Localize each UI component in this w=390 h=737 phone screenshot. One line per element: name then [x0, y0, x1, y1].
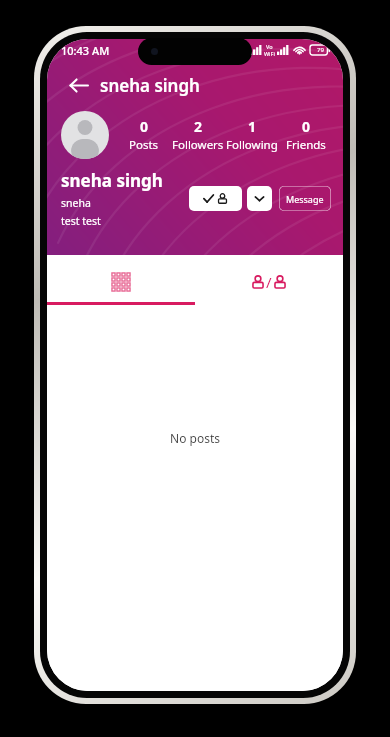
button[interactable]: Friends	[189, 186, 242, 211]
staticText: 1	[248, 117, 257, 136]
button[interactable]: 0	[117, 115, 171, 155]
button[interactable]: Friends list	[195, 262, 343, 302]
button[interactable]: 2	[171, 115, 225, 155]
staticText: 10:43 AM	[61, 43, 110, 58]
staticText: Following	[226, 137, 278, 153]
staticText: No posts	[170, 430, 220, 446]
staticText: WiFi	[264, 50, 275, 57]
staticText: Vo	[266, 43, 273, 50]
staticText: Followers	[172, 137, 224, 153]
staticText: sneha singh	[61, 169, 163, 192]
staticText: test test	[61, 214, 101, 228]
staticText: Posts	[129, 137, 159, 153]
staticText: 0	[302, 117, 311, 136]
button[interactable]: 1	[225, 115, 279, 155]
button[interactable]: 0	[279, 115, 333, 155]
staticText: Message	[286, 193, 324, 205]
staticText: sneha	[61, 196, 91, 210]
staticText: 0	[140, 117, 149, 136]
staticText: sneha singh	[100, 74, 200, 97]
staticText: Friends	[286, 137, 326, 153]
button[interactable]: Posts grid	[47, 262, 195, 302]
staticText: /	[266, 272, 272, 292]
button[interactable]: Profile photo	[61, 111, 109, 159]
staticText: 2	[194, 117, 203, 136]
staticText: 79	[317, 46, 324, 54]
button[interactable]: Back	[61, 68, 95, 102]
button[interactable]: Message	[279, 186, 331, 211]
button[interactable]: More options	[247, 186, 272, 211]
